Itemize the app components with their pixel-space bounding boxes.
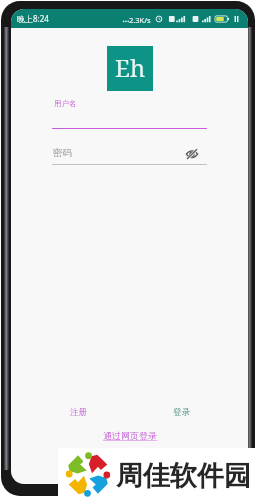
staticText: 用户名 bbox=[54, 99, 77, 108]
staticText: 晚上8:24 bbox=[17, 13, 49, 24]
button[interactable]: Toggle password visibility bbox=[185, 147, 199, 161]
staticText: 注册 bbox=[70, 407, 87, 418]
staticText: 周佳软件园 bbox=[116, 459, 251, 493]
staticText: 登录 bbox=[173, 407, 190, 418]
staticText: Eh bbox=[115, 51, 146, 84]
button[interactable]: 登录 bbox=[165, 402, 197, 422]
button[interactable]: 通过网页登录 bbox=[11, 427, 248, 443]
staticText: 通过网页登录 bbox=[103, 430, 157, 441]
staticText: 2.3K/s bbox=[129, 15, 151, 25]
button[interactable]: 注册 bbox=[62, 402, 94, 422]
staticText: 密码 bbox=[53, 147, 72, 159]
